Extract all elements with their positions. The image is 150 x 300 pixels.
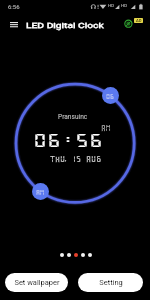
button[interactable]: Hour handle	[102, 87, 119, 104]
staticText: 6:56	[8, 3, 20, 10]
staticText: 06:56	[33, 132, 103, 148]
staticText: HD	[108, 3, 115, 8]
staticText: AM	[101, 124, 111, 132]
staticText: Set wallpaper	[14, 278, 60, 287]
staticText: Pransuinc	[58, 113, 88, 121]
button[interactable]: Setting	[78, 273, 143, 292]
staticText: HD	[121, 3, 128, 8]
staticText: 06	[106, 93, 115, 99]
button[interactable]: Menu	[3, 15, 24, 33]
button[interactable]: Remove ads	[120, 15, 137, 32]
staticText: AM	[36, 189, 45, 195]
staticText: THU, 15 AUG	[50, 155, 101, 163]
staticText: LED Digital Clock	[26, 21, 104, 30]
staticText: Setting	[99, 278, 123, 287]
button[interactable]: Set wallpaper	[5, 273, 68, 292]
button[interactable]: AM PM handle	[32, 183, 49, 200]
staticText: AD	[136, 18, 142, 23]
